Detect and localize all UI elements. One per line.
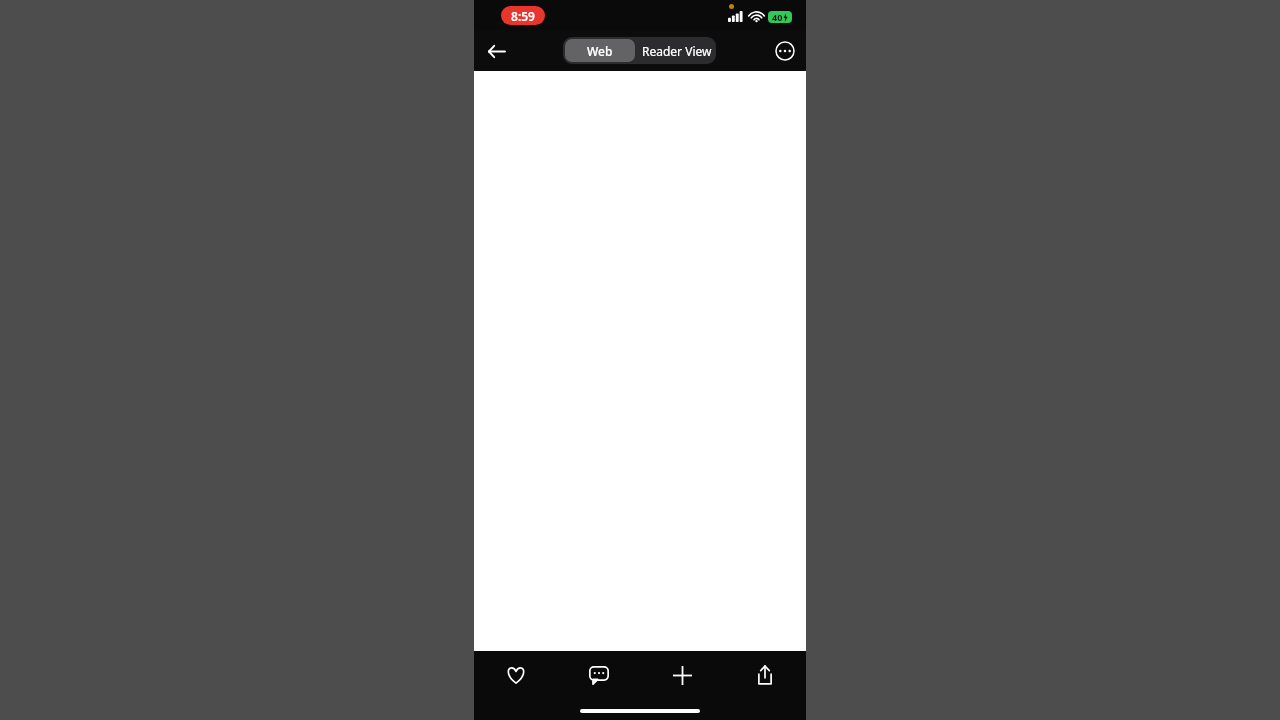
button[interactable]: Reader View: [637, 37, 716, 64]
button[interactable]: Add: [660, 653, 704, 697]
button[interactable]: Comment: [577, 653, 621, 697]
button[interactable]: Share: [743, 653, 787, 697]
staticText: 40: [772, 11, 783, 23]
button[interactable]: More options: [770, 36, 800, 66]
staticText: Web: [587, 43, 613, 59]
staticText: Reader View: [642, 43, 712, 59]
button[interactable]: Web: [565, 39, 635, 62]
button[interactable]: Back: [479, 34, 513, 68]
staticText: 8:59: [511, 8, 535, 24]
button[interactable]: Like: [494, 653, 538, 697]
